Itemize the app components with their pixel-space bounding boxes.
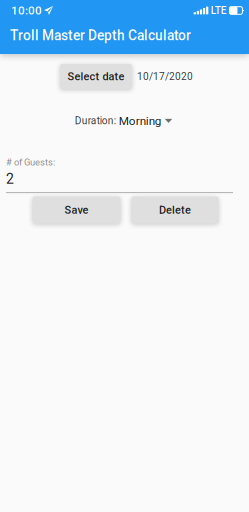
button[interactable]: Save xyxy=(32,197,120,224)
staticText: 2 xyxy=(6,171,14,187)
staticText: Delete xyxy=(159,204,191,216)
staticText: 10/17/2020 xyxy=(137,71,193,82)
staticText: Select date xyxy=(67,70,124,83)
staticText: # of Guests: xyxy=(6,157,55,168)
staticText: Duration: xyxy=(75,115,119,127)
staticText: 10:00 xyxy=(11,4,42,17)
button[interactable]: Duration: xyxy=(75,114,172,128)
staticText: LTE xyxy=(211,5,227,16)
button[interactable]: Select date xyxy=(60,64,132,89)
staticText: Save xyxy=(64,204,88,216)
button[interactable]: Delete xyxy=(131,197,218,224)
staticText: Morning xyxy=(119,114,162,128)
staticText: Troll Master Depth Calculator xyxy=(10,27,191,44)
